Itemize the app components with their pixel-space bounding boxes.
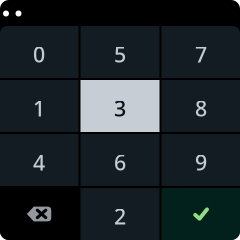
staticText: 7 [195,40,207,68]
button[interactable]: 9 [161,134,240,186]
staticText: 1 [33,94,45,122]
staticText: 2 [114,202,126,230]
staticText: 3 [114,94,126,122]
button[interactable]: 7 [161,26,240,78]
staticText: 8 [195,94,207,122]
button[interactable]: 6 [80,134,159,186]
button[interactable]: 4 [0,134,78,186]
staticText: 0 [33,40,45,68]
button[interactable]: Confirm [161,188,240,240]
button[interactable]: 3 [80,80,159,132]
staticText: 9 [195,148,207,176]
button[interactable]: 1 [0,80,78,132]
staticText: 4 [33,148,45,176]
button[interactable]: 2 [80,188,159,240]
staticText: 5 [114,40,126,68]
button[interactable]: 8 [161,80,240,132]
button[interactable]: 5 [80,26,159,78]
button[interactable]: 0 [0,26,78,78]
button[interactable]: Delete [0,188,78,240]
staticText: 6 [114,148,126,176]
